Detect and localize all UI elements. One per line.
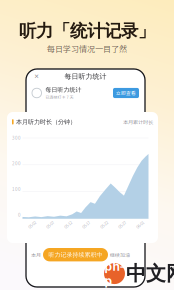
- staticText: 立即查看: [116, 89, 136, 96]
- staticText: 05-22: [99, 222, 108, 228]
- staticText: 本月: [31, 251, 41, 258]
- staticText: 听力「统计记录」: [19, 20, 155, 42]
- staticText: 05-02: [27, 222, 36, 228]
- staticText: 0: [18, 211, 21, 218]
- staticText: 100: [12, 186, 21, 192]
- staticText: 每日学习情况一目了然: [47, 43, 127, 54]
- staticText: 已连续打卡 7 天: [45, 94, 73, 100]
- staticText: 本月累计时长: [123, 118, 153, 126]
- staticText: 05-12: [63, 222, 72, 228]
- staticText: 05-27: [117, 222, 126, 228]
- staticText: 06-01: [135, 222, 144, 228]
- staticText: 继续加油: [110, 251, 130, 258]
- staticText: 200: [12, 160, 21, 167]
- staticText: 本月听力时长（分钟）: [16, 118, 76, 126]
- staticText: php: [104, 259, 124, 288]
- staticText: 每日听力统计: [45, 86, 81, 94]
- staticText: 300: [12, 134, 21, 141]
- button[interactable]: Close: [31, 71, 42, 82]
- button[interactable]: 每日听力统计: [26, 84, 145, 102]
- staticText: 听力记录持续累积中: [48, 251, 102, 258]
- staticText: 每日听力统计: [64, 72, 106, 81]
- staticText: ✕: [34, 73, 39, 80]
- staticText: 05-07: [45, 222, 54, 228]
- staticText: 05-17: [81, 222, 90, 228]
- staticText: 中文网: [126, 261, 174, 286]
- button[interactable]: 听力记录持续累积中: [43, 248, 108, 261]
